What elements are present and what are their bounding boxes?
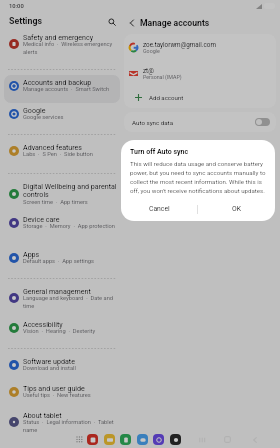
button[interactable]: All apps	[75, 435, 83, 443]
staticText: Digital Wellbeing and parental controls	[23, 182, 119, 199]
button[interactable]: App	[87, 434, 98, 445]
staticText: Download and install	[23, 365, 76, 372]
staticText: Add account	[149, 94, 184, 101]
button[interactable]: Add account	[124, 86, 276, 108]
button[interactable]: Accounts and backup	[4, 75, 120, 103]
button[interactable]: Safety and emergency	[4, 30, 120, 64]
button[interactable]: App	[170, 434, 181, 445]
staticText: Default apps · App settings	[23, 258, 94, 265]
button[interactable]: zt@	[124, 60, 276, 86]
staticText: Language and keyboard · Date and time	[23, 295, 119, 309]
staticText: About tablet	[23, 411, 62, 419]
button[interactable]: Software update	[4, 354, 120, 381]
staticText: Accounts and backup	[23, 78, 92, 86]
staticText: Manage accounts	[140, 18, 210, 28]
staticText: This will reduce data usage and conserve…	[130, 160, 269, 195]
staticText: Apps	[23, 250, 40, 258]
staticText: Useful tips · New features	[23, 392, 91, 399]
staticText: Google	[23, 106, 46, 114]
button[interactable]: Auto sync data	[124, 112, 276, 132]
button[interactable]: Search	[105, 15, 118, 28]
staticText: zoe.taylorwm@gmail.com	[143, 41, 216, 48]
button[interactable]: About tablet	[4, 408, 120, 436]
staticText: Medical info · Wireless emergency alerts	[23, 41, 119, 55]
button[interactable]: App	[104, 434, 115, 445]
button[interactable]: Google	[4, 103, 120, 129]
staticText: Auto sync data	[132, 119, 173, 126]
staticText: Device care	[23, 215, 60, 223]
staticText: Advanced features	[23, 143, 83, 151]
staticText: OK	[232, 205, 241, 213]
staticText: Google	[143, 48, 160, 54]
staticText: Settings	[9, 16, 42, 26]
staticText: Safety and emergency	[23, 33, 94, 41]
staticText: Screen time · App timers	[23, 199, 88, 206]
button[interactable]: Digital Wellbeing and parental controls	[4, 179, 120, 212]
button[interactable]: App	[137, 434, 148, 445]
staticText: zt@	[143, 67, 154, 74]
button[interactable]: App	[153, 434, 164, 445]
staticText: Status · Legal information · Tablet name	[23, 419, 119, 433]
staticText: Cancel	[149, 205, 170, 213]
button[interactable]: Accessibility	[4, 317, 120, 343]
staticText: Software update	[23, 357, 75, 365]
button[interactable]: Home	[222, 434, 233, 445]
staticText: Turn off Auto sync	[130, 148, 189, 156]
staticText: Tips and user guide	[23, 384, 85, 392]
staticText: Google services	[23, 114, 64, 121]
staticText: Labs · S Pen · Side button	[23, 151, 93, 158]
button[interactable]: App	[120, 434, 131, 445]
staticText: 10:00	[9, 3, 24, 10]
staticText: General management	[23, 287, 91, 295]
button[interactable]: General management	[4, 284, 120, 317]
button[interactable]: Back	[125, 16, 138, 29]
staticText: Storage · Memory · App protection	[23, 223, 115, 230]
button[interactable]: Advanced features	[4, 140, 120, 168]
button[interactable]: Tips and user guide	[4, 381, 120, 408]
button[interactable]: Apps	[4, 247, 120, 273]
staticText: Manage accounts · Smart Switch	[23, 86, 110, 93]
staticText: Vision · Hearing · Dexterity	[23, 328, 96, 335]
button[interactable]: Device care	[4, 212, 120, 247]
button[interactable]: Cancel	[121, 199, 197, 219]
button[interactable]: OK	[198, 199, 275, 219]
staticText: Personal (IMAP)	[143, 74, 182, 80]
staticText: Accessibility	[23, 320, 63, 328]
button[interactable]: Recents	[196, 434, 207, 445]
button[interactable]: zoe.taylorwm@gmail.com	[124, 34, 276, 60]
